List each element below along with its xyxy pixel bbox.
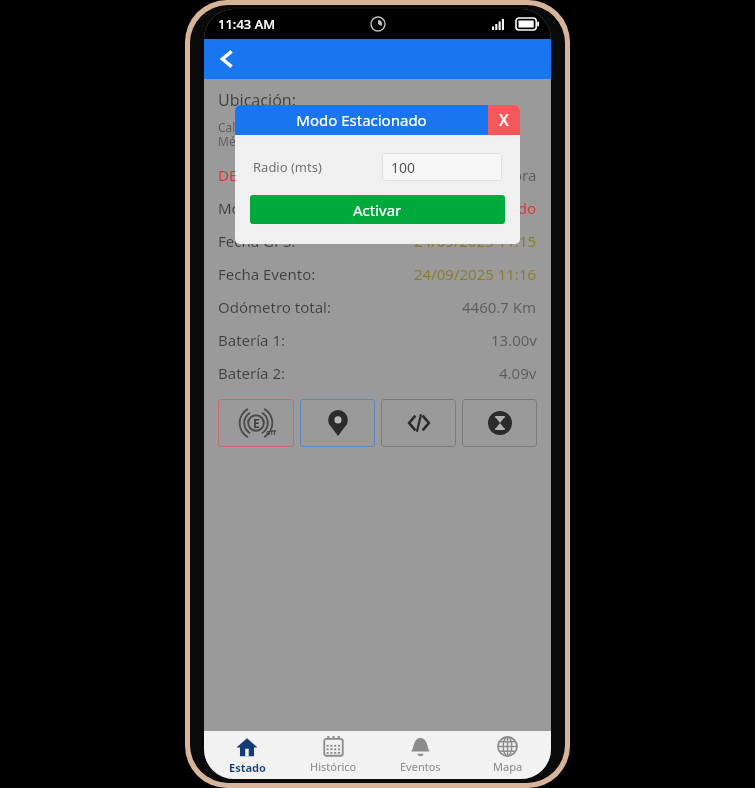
button[interactable]: Estado <box>204 731 290 779</box>
staticText: Modo Estacionado <box>296 110 427 130</box>
button[interactable]: Location <box>300 399 375 447</box>
button[interactable]: Histórico <box>290 731 377 779</box>
staticText: Calle Colegio 100-260, Vallecitos de Méx… <box>218 119 416 150</box>
staticText: Radio (mts) <box>253 158 322 176</box>
button[interactable]: Back <box>204 39 551 79</box>
staticText: hace 1 hora <box>454 165 537 185</box>
staticText: Ubicación: <box>218 89 296 111</box>
staticText: Motor: <box>218 198 266 218</box>
staticText: 11:43 AM <box>218 15 276 33</box>
staticText: Fecha GPS: <box>218 231 296 251</box>
staticText: Apagado <box>473 198 537 218</box>
staticText: E <box>253 415 260 431</box>
staticText: X <box>499 109 509 131</box>
staticText: Mapa <box>493 759 523 774</box>
button[interactable]: Mapa <box>464 731 551 779</box>
staticText: off <box>266 428 276 438</box>
button[interactable]: Engine brake <box>218 399 294 447</box>
button[interactable]: Activar <box>250 195 505 224</box>
staticText: 4.09v <box>499 363 537 383</box>
staticText: Histórico <box>310 759 357 774</box>
staticText: Activar <box>353 200 402 220</box>
staticText: Estado <box>229 760 266 775</box>
staticText: Fecha Evento: <box>218 264 316 284</box>
button[interactable]: 100 <box>382 153 502 181</box>
staticText: 24/09/2025 11:16 <box>414 264 537 284</box>
staticText: DETENIDO <box>218 165 294 185</box>
staticText: 13.00v <box>491 330 537 350</box>
staticText: Odómetro total: <box>218 297 331 317</box>
staticText: 4460.7 Km <box>462 297 537 317</box>
staticText: Batería 2: <box>218 363 286 383</box>
button[interactable]: Timer <box>462 399 537 447</box>
button[interactable]: Eventos <box>377 731 464 779</box>
staticText: 100 <box>391 158 416 177</box>
staticText: Batería 1: <box>218 330 286 350</box>
staticText: 24/09/2025 11:15 <box>414 231 537 251</box>
button[interactable]: Commands <box>381 399 456 447</box>
staticText: Eventos <box>400 759 441 774</box>
button[interactable]: Close <box>488 105 520 135</box>
